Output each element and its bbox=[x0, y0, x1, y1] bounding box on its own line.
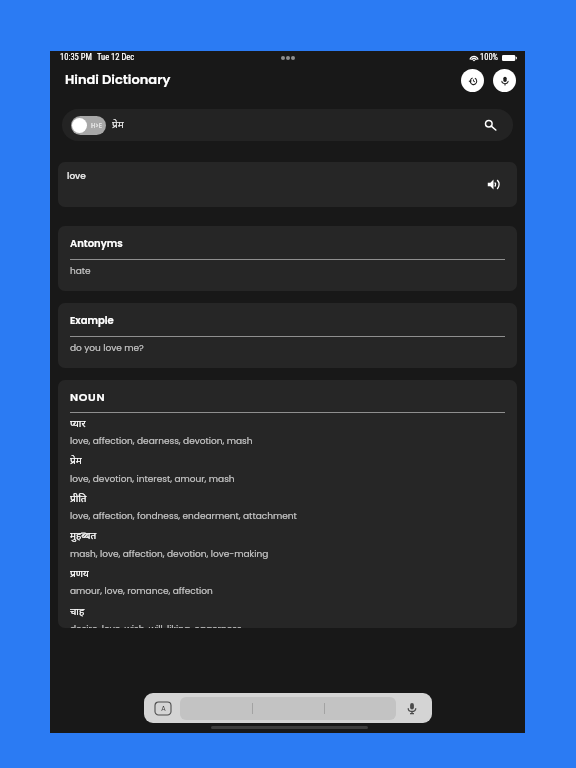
staticText: love, devotion, interest, amour, mash bbox=[70, 473, 235, 486]
staticText: 10:35 PM bbox=[60, 52, 92, 62]
staticText: Antonyms bbox=[70, 236, 123, 250]
staticText: love, affection, fondness, endearment, a… bbox=[70, 510, 297, 523]
button[interactable]: Example bbox=[58, 303, 517, 368]
button[interactable]: Search bbox=[481, 116, 498, 133]
button[interactable]: Language bbox=[155, 702, 171, 715]
staticText: desire, love, wish, will, liking, eagern… bbox=[70, 623, 242, 628]
button[interactable]: Pronounce bbox=[487, 178, 500, 191]
staticText: 100% bbox=[480, 52, 498, 62]
staticText: प्रणय bbox=[70, 568, 89, 581]
staticText: प्यार bbox=[70, 418, 86, 431]
staticText: प्रेम bbox=[70, 455, 82, 468]
staticText: love bbox=[67, 170, 86, 183]
staticText: A bbox=[161, 704, 166, 714]
button[interactable]: Language bbox=[144, 693, 432, 723]
button[interactable]: History bbox=[461, 69, 484, 92]
staticText: H>E bbox=[91, 122, 102, 130]
button[interactable]: Voice search bbox=[493, 69, 516, 92]
staticText: मुहब्बत bbox=[70, 530, 97, 543]
button[interactable]: Hindi to English toggle bbox=[62, 109, 513, 141]
staticText: NOUN bbox=[70, 389, 106, 404]
staticText: love, affection, dearness, devotion, mas… bbox=[70, 435, 253, 448]
staticText: hate bbox=[70, 265, 91, 278]
button[interactable]: Hindi to English toggle bbox=[71, 116, 106, 135]
staticText: do you love me? bbox=[70, 342, 144, 355]
button[interactable]: Voice input bbox=[405, 701, 419, 715]
staticText: प्रीति bbox=[70, 493, 87, 506]
staticText: Tue 12 Dec bbox=[97, 52, 135, 62]
button[interactable]: Antonyms bbox=[58, 226, 517, 291]
button[interactable]: love bbox=[58, 162, 517, 207]
staticText: प्रेम bbox=[112, 119, 124, 132]
staticText: amour, love, romance, affection bbox=[70, 585, 213, 598]
staticText: चाह bbox=[70, 606, 85, 619]
staticText: Example bbox=[70, 313, 114, 327]
staticText: mash, love, affection, devotion, love-ma… bbox=[70, 548, 269, 561]
staticText: Hindi Dictionary bbox=[65, 70, 171, 88]
